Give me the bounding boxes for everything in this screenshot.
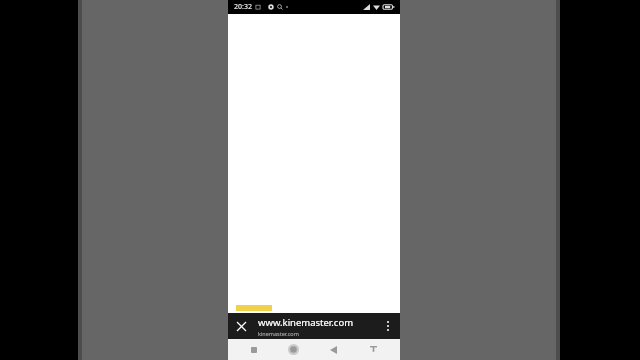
staticText: kinemaster.com xyxy=(258,330,299,337)
staticText: 20:32 xyxy=(234,2,252,12)
staticText: www.kinemaster.com xyxy=(258,316,354,329)
button[interactable]: Home xyxy=(282,339,304,360)
button[interactable]: More options xyxy=(376,313,400,339)
button[interactable]: Close xyxy=(228,313,254,339)
button[interactable]: Recent apps xyxy=(243,339,265,360)
button[interactable]: Hide keyboard xyxy=(362,339,384,360)
button[interactable]: Back xyxy=(322,339,344,360)
button[interactable]: www.kinemaster.com xyxy=(254,313,376,339)
